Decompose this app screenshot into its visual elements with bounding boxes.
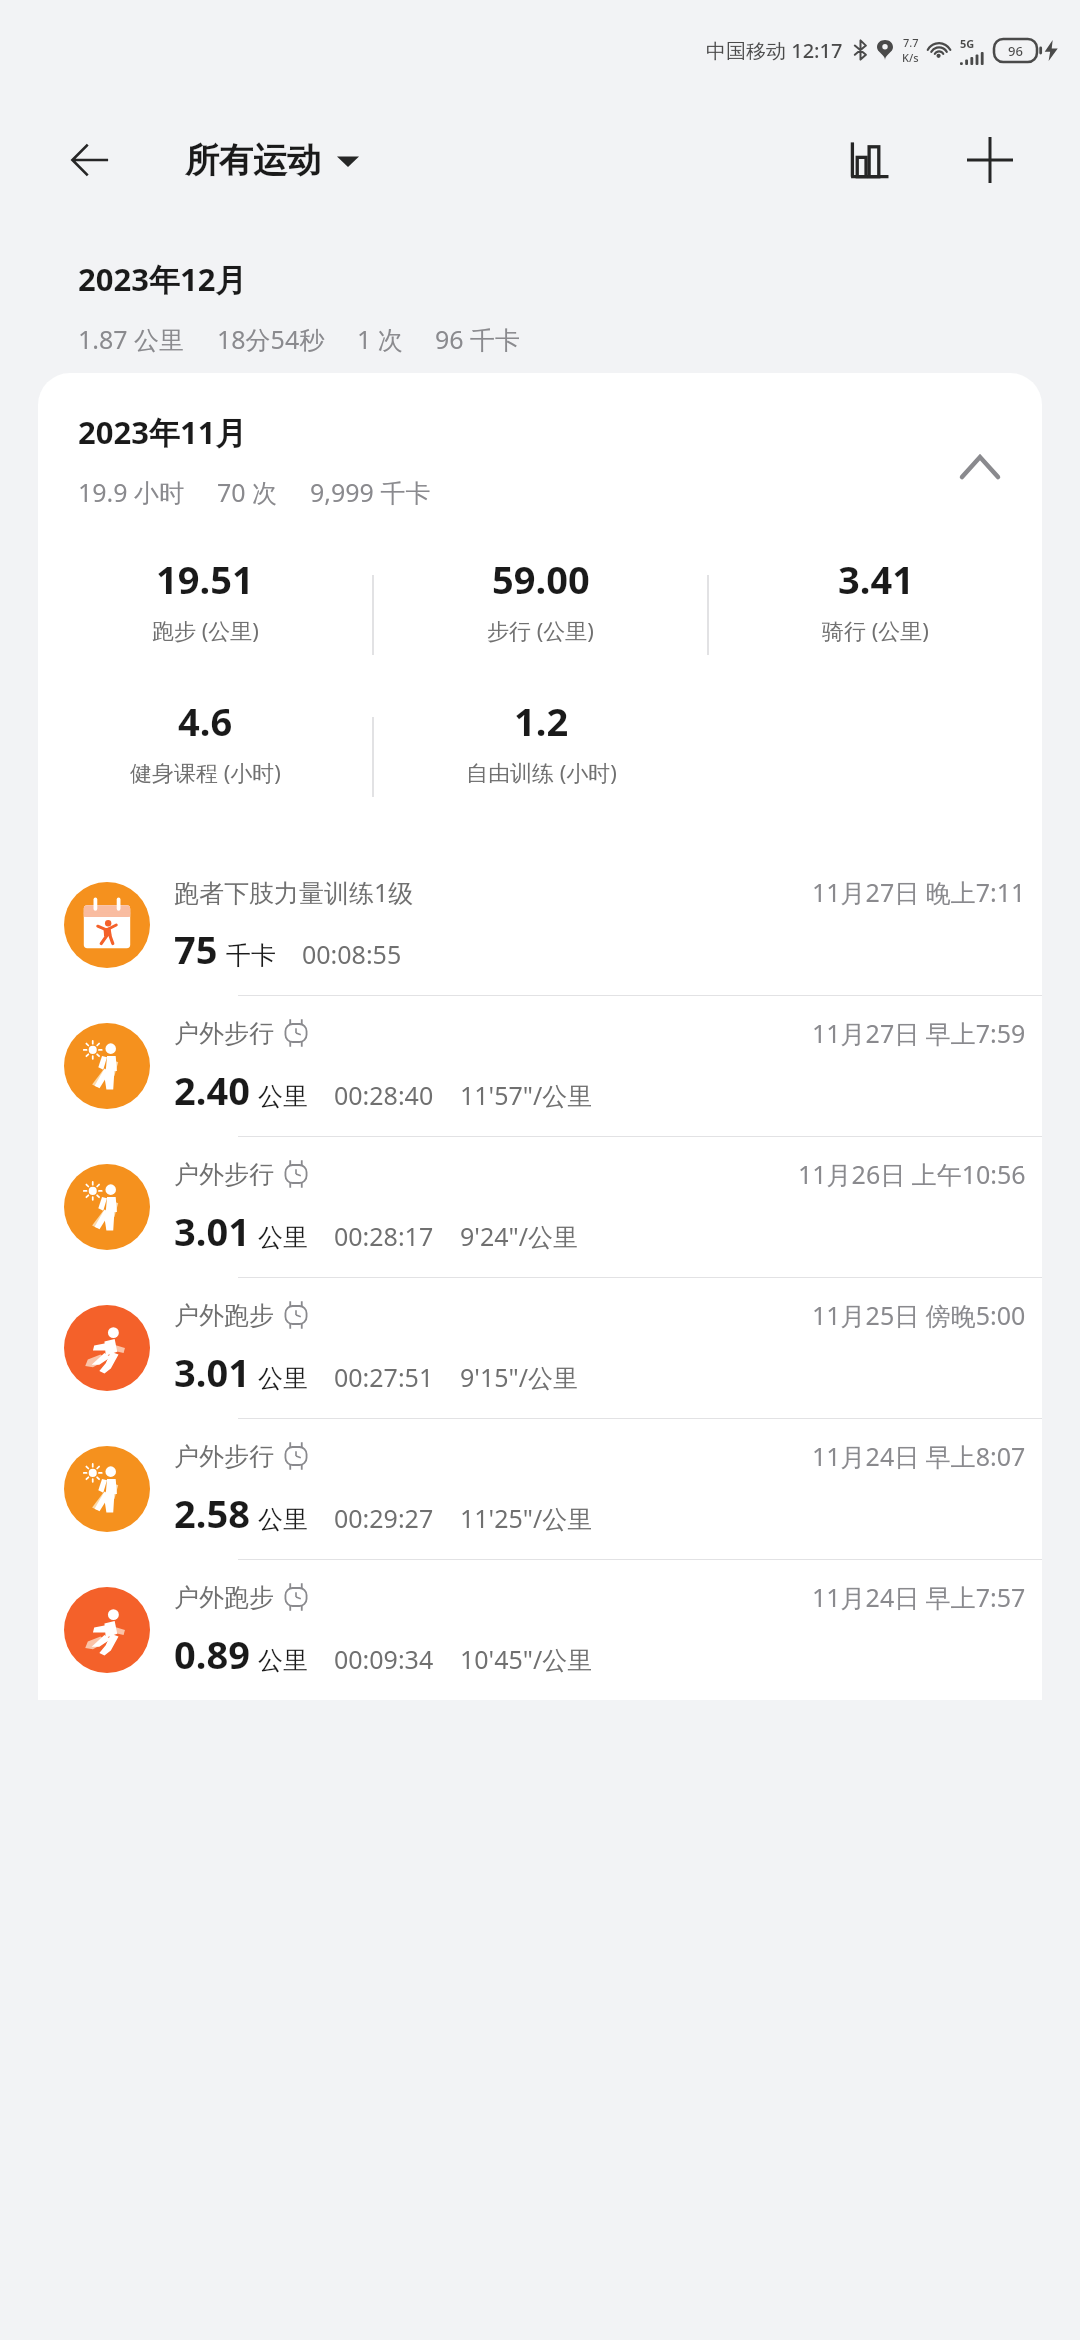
button[interactable]: 户外步行 [38,995,1042,1136]
staticText: 3.01 [174,1205,250,1257]
staticText: 户外跑步 [174,1300,274,1331]
staticText: 1 次 [357,322,403,356]
button[interactable]: 户外步行 [38,1418,1042,1559]
staticText: 户外步行 [174,1159,274,1190]
staticText: 公里 [258,1645,308,1676]
button[interactable]: 统计图表 [835,125,905,195]
button[interactable]: 3.41 [709,553,1042,645]
staticText: 5G [960,36,975,51]
staticText: 00:28:40 [334,1078,434,1112]
staticText: 11月25日 傍晚5:00 [812,1298,1026,1332]
button[interactable]: 59.00 [374,553,707,645]
button[interactable]: 所有运动 [185,139,359,182]
button[interactable]: 2023年11月 [38,373,1042,509]
staticText: 59.00 [492,553,590,605]
staticText: 公里 [258,1504,308,1535]
staticText: 7.7 [903,35,919,50]
button[interactable]: 户外步行 [38,1136,1042,1277]
staticText: 公里 [258,1363,308,1394]
button[interactable]: 户外跑步 [38,1559,1042,1700]
staticText: 3.41 [838,553,914,605]
staticText: 11月27日 晚上7:11 [812,875,1026,909]
staticText: 骑行 (公里) [822,615,929,645]
staticText: 11月26日 上午10:56 [798,1157,1026,1191]
button[interactable]: 19.51 [38,553,372,645]
staticText: 2.40 [174,1064,250,1116]
button[interactable]: 1.2 [374,695,708,787]
staticText: 96 [1008,42,1023,60]
staticText: 千卡 [226,940,276,971]
staticText: 70 次 [217,475,278,509]
staticText: 0.89 [174,1628,250,1680]
staticText: 2023年11月 [78,411,247,453]
staticText: 11月24日 早上7:57 [812,1580,1026,1614]
staticText: 75 [174,923,218,975]
staticText: 00:08:55 [302,937,402,971]
staticText: 步行 (公里) [487,615,594,645]
staticText: 96 千卡 [435,322,521,356]
staticText: 9,999 千卡 [310,475,431,509]
staticText: 00:09:34 [334,1642,434,1676]
staticText: 所有运动 [185,139,321,182]
staticText: 9'15"/公里 [460,1360,579,1394]
staticText: 18分54秒 [217,322,325,356]
staticText: 跑者下肢力量训练1级 [174,875,414,909]
button[interactable]: 4.6 [38,695,372,787]
staticText: 10'45"/公里 [460,1642,593,1676]
staticText: 4.6 [178,695,233,747]
staticText: 健身课程 (小时) [130,757,281,787]
button[interactable]: 跑者下肢力量训练1级 [38,855,1042,995]
staticText: 00:28:17 [334,1219,434,1253]
staticText: 00:29:27 [334,1501,434,1535]
staticText: 1.87 公里 [78,322,185,356]
staticText: 00:27:51 [334,1360,434,1394]
staticText: 11月27日 早上7:59 [812,1016,1026,1050]
staticText: 11月24日 早上8:07 [812,1439,1026,1473]
button[interactable]: 返回 [60,130,120,190]
staticText: 公里 [258,1081,308,1112]
staticText: 19.51 [156,553,254,605]
staticText: 1.2 [514,695,569,747]
button[interactable]: 添加 [955,125,1025,195]
staticText: 19.9 小时 [78,475,185,509]
staticText: 自由训练 (小时) [466,757,617,787]
staticText: 跑步 (公里) [152,615,259,645]
staticText: 2.58 [174,1487,250,1539]
staticText: K/s [902,50,919,65]
staticText: 户外步行 [174,1441,274,1472]
staticText: 2023年12月 [78,258,247,300]
staticText: 户外跑步 [174,1582,274,1613]
staticText: 公里 [258,1222,308,1253]
staticText: 户外步行 [174,1018,274,1049]
staticText: 11'57"/公里 [460,1078,593,1112]
staticText: 11'25"/公里 [460,1501,593,1535]
button[interactable]: 户外跑步 [38,1277,1042,1418]
staticText: 中国移动 12:17 [706,37,843,64]
staticText: 9'24"/公里 [460,1219,579,1253]
staticText: 3.01 [174,1346,250,1398]
